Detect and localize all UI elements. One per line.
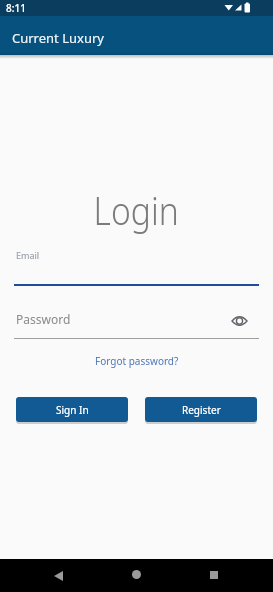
staticText: Sign In — [56, 403, 89, 417]
button[interactable]: Register — [145, 397, 257, 422]
staticText: Password — [16, 311, 71, 327]
staticText: Register — [182, 403, 221, 417]
staticText: Login — [94, 184, 179, 236]
button[interactable]: Forgot password? — [95, 354, 179, 368]
staticText: Current Luxury — [12, 29, 104, 47]
staticText: 8:11 — [6, 1, 26, 15]
staticText: Email — [16, 249, 40, 261]
button[interactable] — [54, 571, 63, 581]
button[interactable] — [132, 570, 141, 579]
button[interactable] — [231, 314, 248, 328]
button[interactable]: Sign In — [16, 397, 128, 422]
